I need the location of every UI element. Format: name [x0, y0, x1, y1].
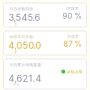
button[interactable]: 今日步数目标	[3, 3, 86, 27]
staticText: 87 %	[63, 40, 81, 49]
staticText: 目标达成	[66, 69, 82, 74]
staticText: 今日步数目标	[9, 6, 33, 11]
staticText: 3,545.6	[8, 12, 40, 23]
staticText: 今日累计消耗能量	[9, 62, 41, 67]
staticText: 步	[14, 22, 17, 27]
staticText: 本周平均步数	[9, 34, 33, 39]
staticText: 90 %	[62, 12, 81, 21]
staticText: 步	[14, 50, 17, 55]
staticText: 完成率	[67, 34, 79, 39]
staticText: 完成率	[67, 6, 79, 11]
staticText: 千卡	[13, 83, 19, 87]
button[interactable]: 今日累计消耗能量	[3, 59, 86, 89]
staticText: 4,050.0	[8, 40, 41, 51]
staticText: 4,621.4	[8, 73, 41, 84]
button[interactable]: 本周平均步数	[3, 31, 86, 55]
